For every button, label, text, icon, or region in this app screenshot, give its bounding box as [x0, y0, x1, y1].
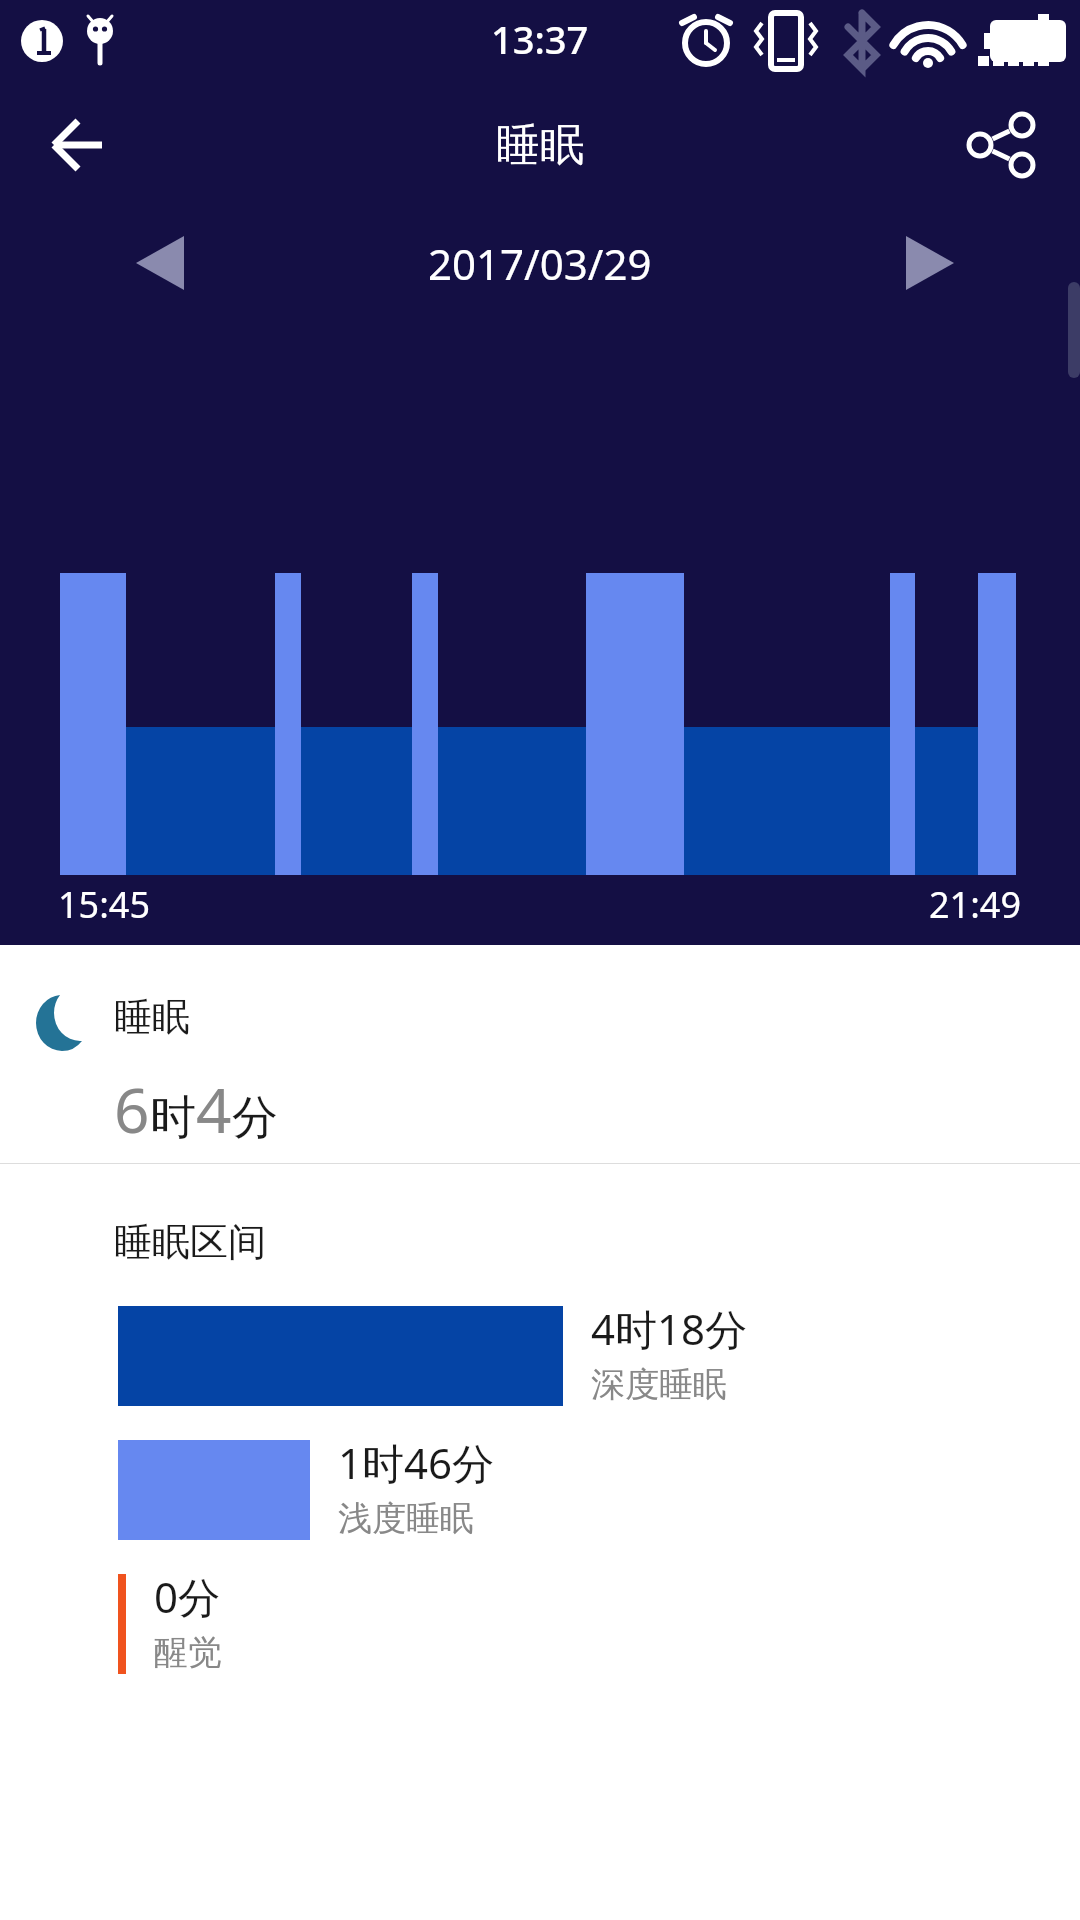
staticText: 浅度睡眠 [338, 1497, 474, 1540]
staticText: 醒觉 [154, 1631, 222, 1674]
staticText: 2017/03/29 [428, 235, 652, 292]
staticText: 睡眠 [114, 993, 190, 1041]
staticText: 睡眠区间 [114, 1218, 266, 1266]
staticText: 深度睡眠 [591, 1363, 727, 1406]
button[interactable]: Previous day [120, 223, 200, 303]
staticText: 时 [150, 1089, 196, 1147]
staticText: 6 [114, 1067, 150, 1151]
staticText: 分 [232, 1089, 278, 1147]
button[interactable]: 4时18分 [0, 1306, 1080, 1412]
staticText: 0分 [154, 1568, 221, 1625]
button[interactable]: Next day [890, 223, 970, 303]
button[interactable]: 0分 [0, 1574, 1080, 1680]
button[interactable]: 睡眠 [0, 945, 1080, 1163]
staticText: 21:49 [929, 880, 1022, 929]
staticText: 15:45 [58, 880, 151, 929]
button[interactable]: 1时46分 [0, 1440, 1080, 1546]
staticText: 4 [196, 1067, 232, 1151]
staticText: 4时18分 [591, 1300, 748, 1357]
staticText: 睡眠 [496, 118, 584, 173]
staticText: 13:37 [491, 13, 589, 65]
button[interactable]: Share [954, 97, 1050, 193]
staticText: 1时46分 [338, 1434, 495, 1491]
button[interactable]: Back [30, 97, 126, 193]
